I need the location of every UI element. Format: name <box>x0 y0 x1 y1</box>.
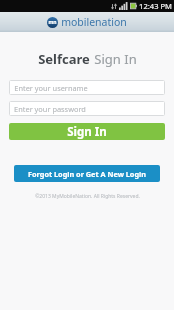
button[interactable]: Enter your password <box>9 101 165 116</box>
button[interactable]: Enter your username <box>9 80 165 95</box>
staticText: Sign In <box>67 124 107 140</box>
button[interactable]: Forgot Login or Get A New Login <box>14 165 160 182</box>
staticText: Enter your username <box>14 83 88 93</box>
staticText: mn <box>48 19 57 26</box>
staticText: Forgot Login or Get A New Login <box>28 169 146 179</box>
staticText: mobilenation <box>61 15 127 29</box>
staticText: ©2013 MyMobileNation. All Rights Reserve… <box>35 193 140 200</box>
staticText: Sign In <box>94 50 137 68</box>
staticText: Enter your password <box>14 104 86 114</box>
button[interactable]: Sign In <box>9 123 165 140</box>
staticText: Selfcare <box>38 50 90 68</box>
staticText: 12:43 PM <box>139 1 172 11</box>
